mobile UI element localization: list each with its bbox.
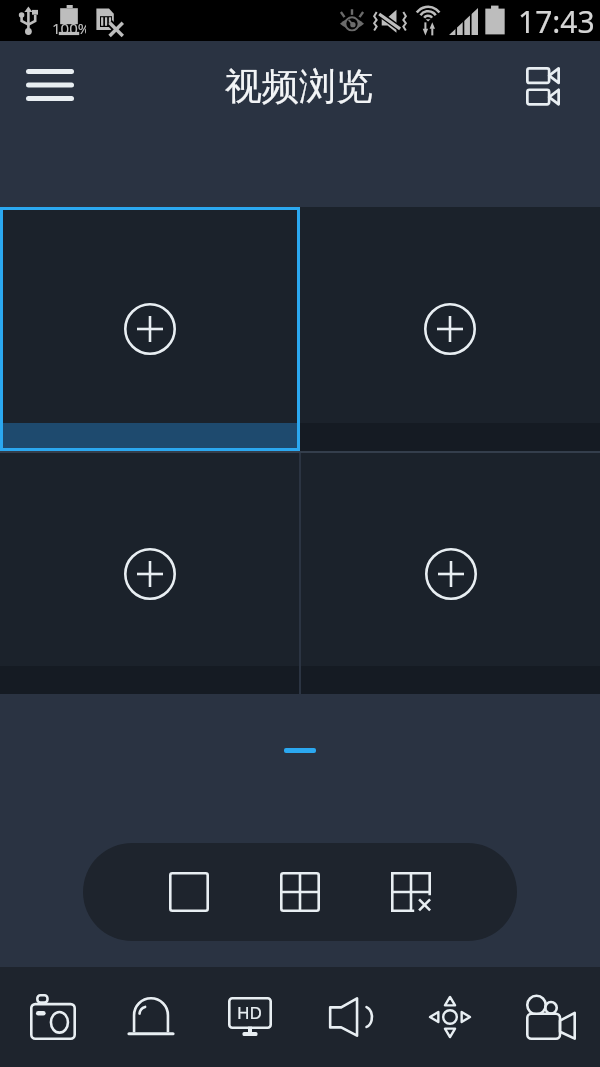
staticText: 17:43	[518, 1, 595, 42]
button[interactable]: Four view	[261, 853, 339, 931]
button[interactable]	[301, 453, 600, 694]
staticText: HD	[237, 1001, 263, 1024]
button[interactable]	[0, 453, 299, 694]
button[interactable]: Close all	[372, 853, 450, 931]
staticText: 100%	[52, 18, 86, 38]
button[interactable]: Alarm	[100, 967, 200, 1067]
button[interactable]: Single view	[150, 853, 228, 931]
button[interactable]	[0, 207, 300, 451]
button[interactable]: PTZ	[400, 967, 500, 1067]
button[interactable]: Audio	[300, 967, 400, 1067]
button[interactable]: HD quality	[200, 967, 300, 1067]
button[interactable]: Record	[500, 967, 600, 1067]
button[interactable]: Menu	[4, 41, 96, 129]
staticText: 视频浏览	[225, 63, 373, 110]
button[interactable]: Snapshot	[0, 967, 100, 1067]
button[interactable]: Multi camera	[516, 41, 592, 129]
button[interactable]	[300, 207, 600, 451]
